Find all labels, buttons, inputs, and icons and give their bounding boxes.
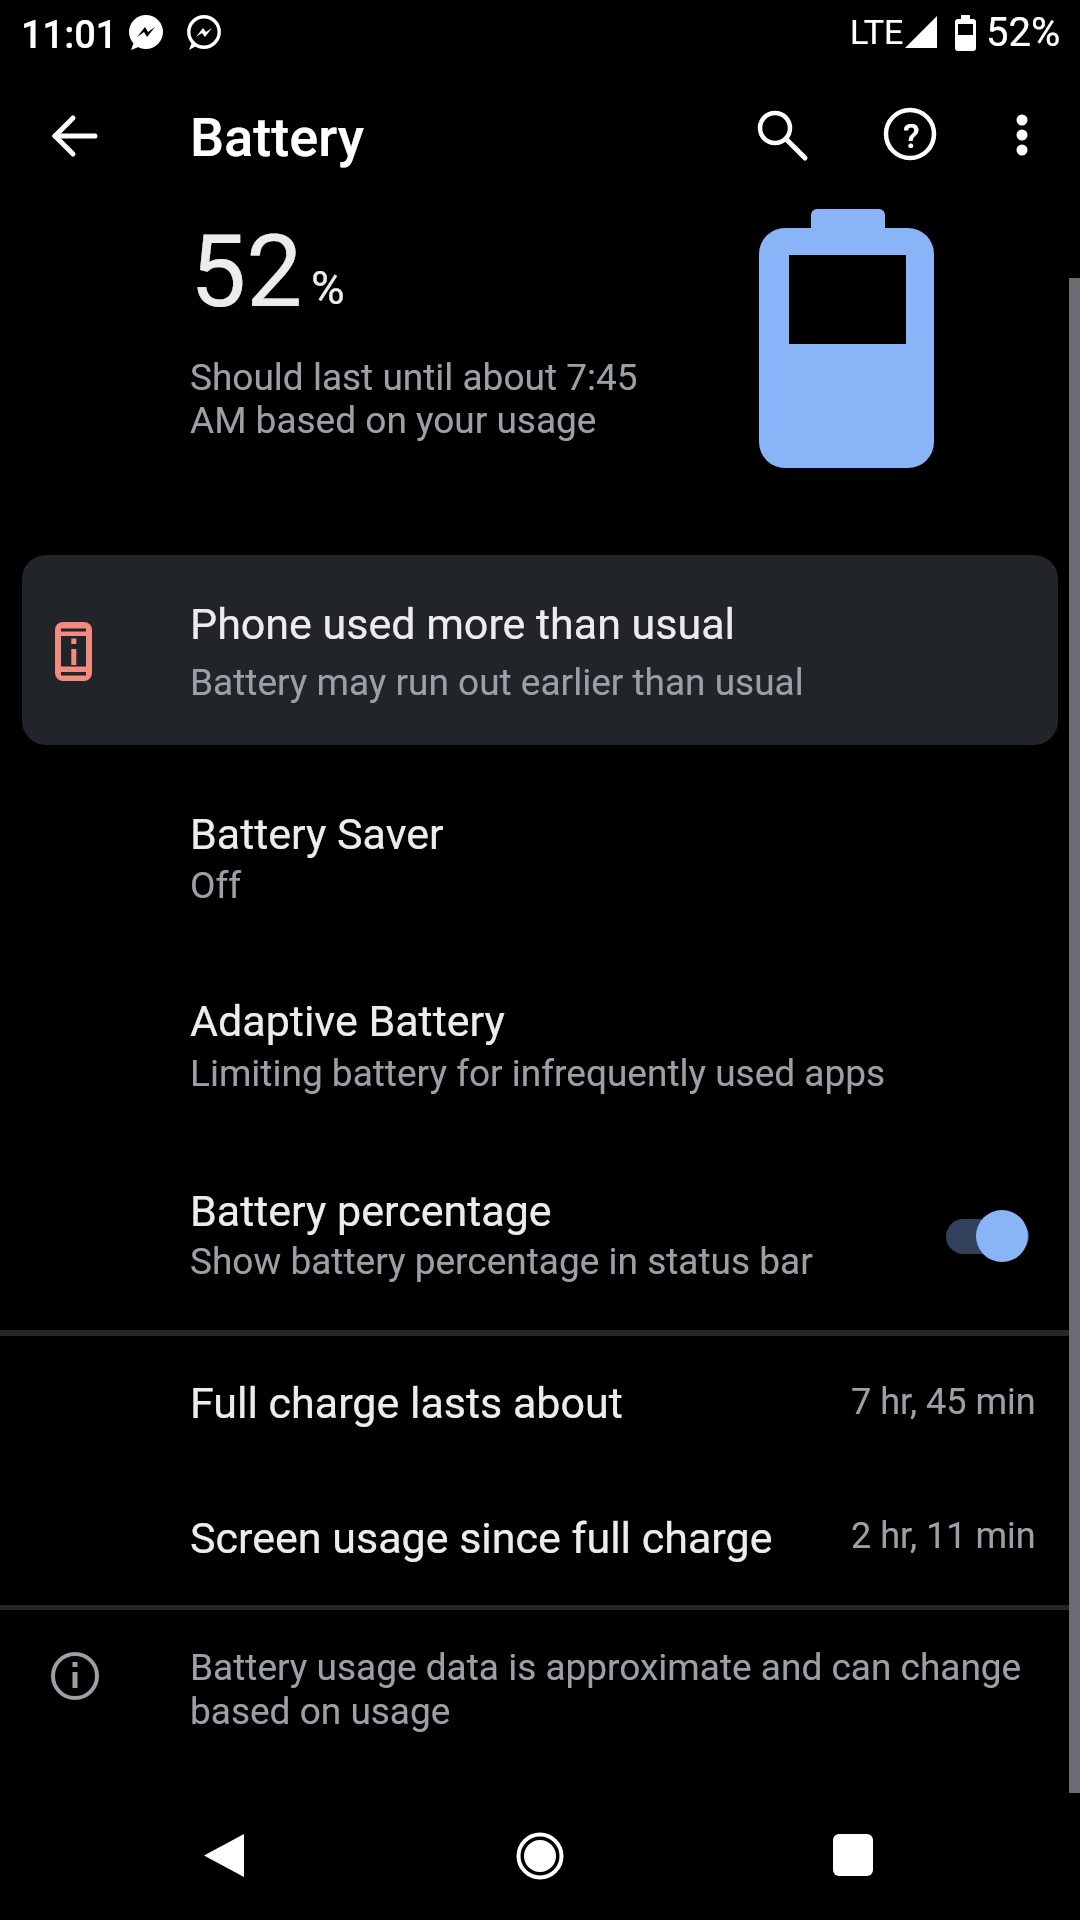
button[interactable] bbox=[500, 1816, 580, 1896]
button[interactable] bbox=[40, 101, 110, 171]
staticText: 7 hr, 45 min bbox=[851, 1381, 1036, 1423]
staticText: 11:01 bbox=[21, 13, 118, 58]
button[interactable]: Adaptive Battery bbox=[0, 978, 1080, 1118]
button[interactable] bbox=[813, 1816, 893, 1896]
staticText: Limiting battery for infrequently used a… bbox=[190, 1052, 886, 1095]
staticText: LTE bbox=[850, 12, 904, 52]
button[interactable]: Phone used more than usual bbox=[22, 555, 1058, 745]
staticText: Battery Saver bbox=[190, 809, 444, 859]
button[interactable] bbox=[184, 1816, 264, 1896]
staticText: Screen usage since full charge bbox=[190, 1513, 773, 1563]
staticText: Adaptive Battery bbox=[190, 996, 505, 1046]
button[interactable]: Full charge lasts about bbox=[0, 1360, 1080, 1460]
staticText: Full charge lasts about bbox=[190, 1378, 623, 1428]
staticText: 52 bbox=[190, 213, 303, 330]
button[interactable] bbox=[745, 100, 815, 170]
staticText: Battery bbox=[190, 106, 365, 169]
staticText: 52% bbox=[986, 9, 1061, 56]
staticText: 2 hr, 11 min bbox=[851, 1515, 1036, 1557]
staticText: Should last until about 7:45 AM based on… bbox=[190, 356, 638, 442]
staticText: Battery percentage bbox=[190, 1186, 552, 1236]
staticText: Battery may run out earlier than usual bbox=[190, 661, 804, 704]
staticText: Phone used more than usual bbox=[190, 599, 736, 649]
staticText: % bbox=[311, 261, 345, 315]
button[interactable]: Battery Saver bbox=[0, 790, 1080, 930]
button[interactable]: ? bbox=[875, 99, 945, 169]
button[interactable] bbox=[946, 1216, 1030, 1256]
staticText: Show battery percentage in status bar bbox=[190, 1240, 813, 1283]
button[interactable]: Battery percentage bbox=[0, 1168, 1080, 1313]
button[interactable] bbox=[987, 99, 1057, 169]
staticText: Battery usage data is approximate and ca… bbox=[190, 1646, 1022, 1733]
button[interactable]: Battery usage data is approximate and ca… bbox=[0, 1620, 1080, 1750]
staticText: Off bbox=[190, 864, 242, 907]
button[interactable]: Screen usage since full charge bbox=[0, 1497, 1080, 1597]
staticText: ? bbox=[903, 116, 920, 156]
